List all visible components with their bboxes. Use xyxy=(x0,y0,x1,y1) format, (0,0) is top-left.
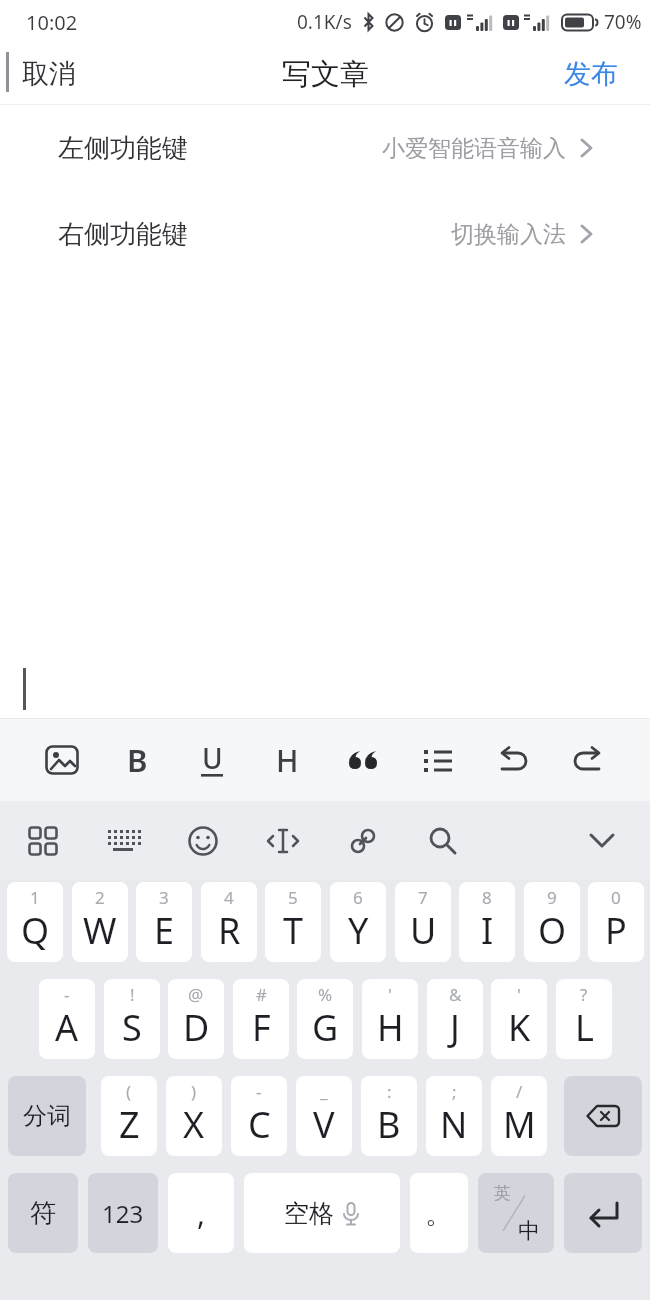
button[interactable]: ? xyxy=(556,979,612,1059)
button[interactable]: - xyxy=(39,979,95,1059)
button[interactable]: U xyxy=(189,737,235,783)
staticText: J xyxy=(450,1003,460,1052)
button[interactable]: 5 xyxy=(265,882,321,962)
button[interactable]: - xyxy=(231,1076,287,1156)
staticText: U xyxy=(410,906,437,955)
button[interactable]: 写文章 xyxy=(282,56,369,93)
button[interactable]: 分词 xyxy=(8,1076,86,1156)
staticText: - xyxy=(256,1080,262,1103)
button[interactable] xyxy=(565,737,611,783)
button[interactable] xyxy=(415,737,461,783)
staticText: ) xyxy=(191,1080,197,1103)
button[interactable]: 3 xyxy=(136,882,192,962)
button[interactable]: ' xyxy=(491,979,547,1059)
button[interactable]: # xyxy=(233,979,289,1059)
staticText: 发布 xyxy=(564,57,618,91)
button[interactable] xyxy=(252,811,314,871)
button[interactable]: % xyxy=(297,979,353,1059)
staticText: R xyxy=(218,906,241,955)
button[interactable] xyxy=(340,737,386,783)
button[interactable]: ; xyxy=(426,1076,482,1156)
button[interactable]: ) xyxy=(166,1076,222,1156)
button[interactable]: 9 xyxy=(524,882,580,962)
staticText: L xyxy=(575,1003,594,1052)
staticText: , xyxy=(197,1193,206,1234)
button[interactable]: _ xyxy=(296,1076,352,1156)
staticText: _ xyxy=(320,1080,328,1103)
button[interactable]: 6 xyxy=(330,882,386,962)
button[interactable]: 空格 xyxy=(244,1173,400,1253)
staticText: 70% xyxy=(604,9,642,35)
staticText: B xyxy=(127,739,148,781)
staticText: 左侧功能键 xyxy=(58,132,188,165)
button[interactable]: 7 xyxy=(395,882,451,962)
button[interactable]: @ xyxy=(168,979,224,1059)
staticText: ' xyxy=(517,983,521,1006)
button[interactable]: 取消 xyxy=(22,57,76,91)
button[interactable]: 1 xyxy=(7,882,63,962)
button[interactable]: & xyxy=(427,979,483,1059)
staticText: 10:02 xyxy=(26,9,78,36)
staticText: 空格 xyxy=(284,1198,334,1229)
staticText: F xyxy=(252,1003,271,1052)
button[interactable]: 英 xyxy=(478,1173,554,1253)
button[interactable]: B xyxy=(114,737,160,783)
staticText: 切换输入法 xyxy=(451,220,566,249)
button[interactable] xyxy=(12,811,74,871)
button[interactable]: 发布 xyxy=(564,57,618,91)
staticText: 中 xyxy=(518,1217,540,1245)
button[interactable]: 2 xyxy=(72,882,128,962)
staticText: T xyxy=(283,906,304,955)
button[interactable] xyxy=(332,811,394,871)
staticText: G xyxy=(312,1003,339,1052)
button[interactable]: 。 xyxy=(410,1173,468,1253)
button[interactable] xyxy=(564,1076,642,1156)
button[interactable]: ' xyxy=(362,979,418,1059)
button[interactable]: 左侧功能键 xyxy=(58,105,594,191)
button[interactable]: ( xyxy=(101,1076,157,1156)
button[interactable] xyxy=(39,737,85,783)
staticText: 1 xyxy=(30,886,40,909)
staticText: 123 xyxy=(102,1197,144,1230)
button[interactable]: H xyxy=(264,737,310,783)
button[interactable]: / xyxy=(491,1076,547,1156)
staticText: O xyxy=(538,906,567,955)
button[interactable] xyxy=(92,811,154,871)
staticText: 3 xyxy=(159,886,169,909)
staticText: 8 xyxy=(482,886,492,909)
staticText: % xyxy=(318,983,333,1006)
staticText: M xyxy=(503,1100,536,1149)
staticText: 分词 xyxy=(23,1101,71,1131)
staticText: Z xyxy=(119,1100,140,1149)
staticText: 符 xyxy=(30,1197,56,1230)
staticText: I xyxy=(481,906,494,955)
staticText: B xyxy=(377,1100,401,1149)
staticText: ! xyxy=(130,983,135,1006)
staticText: E xyxy=(154,906,175,955)
button[interactable]: : xyxy=(361,1076,417,1156)
staticText: 9 xyxy=(547,886,557,909)
staticText: 4 xyxy=(224,886,234,909)
button[interactable] xyxy=(490,737,536,783)
button[interactable] xyxy=(172,811,234,871)
button[interactable]: 右侧功能键 xyxy=(58,191,594,277)
button[interactable]: 8 xyxy=(459,882,515,962)
staticText: & xyxy=(449,983,462,1006)
button[interactable] xyxy=(412,811,474,871)
button[interactable]: 符 xyxy=(8,1173,78,1253)
button[interactable]: , xyxy=(168,1173,234,1253)
staticText: 2 xyxy=(95,886,105,909)
staticText: Y xyxy=(348,906,369,955)
button[interactable]: 0 xyxy=(588,882,644,962)
staticText: V xyxy=(313,1100,335,1149)
button[interactable]: 4 xyxy=(201,882,257,962)
staticText: 右侧功能键 xyxy=(58,218,188,251)
staticText: : xyxy=(387,1080,392,1103)
button[interactable]: ! xyxy=(104,979,160,1059)
staticText: 6 xyxy=(353,886,363,909)
button[interactable]: 123 xyxy=(88,1173,158,1253)
button[interactable] xyxy=(580,811,624,871)
staticText: C xyxy=(248,1100,271,1149)
button[interactable] xyxy=(564,1173,642,1253)
staticText: A xyxy=(55,1003,79,1052)
